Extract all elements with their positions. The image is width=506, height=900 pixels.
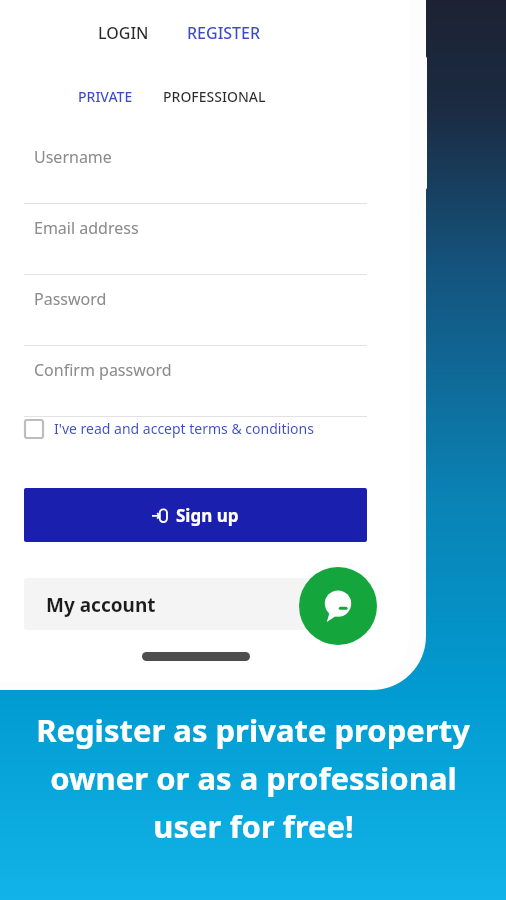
staticText: Register as private property [36,709,470,751]
staticText: Confirm password [34,359,172,381]
staticText: I've read and accept terms & conditions [54,419,314,438]
button[interactable]: My account [24,578,367,630]
button[interactable]: Username [24,144,367,204]
staticText: PRIVATE [78,87,133,106]
button[interactable]: REGISTER [181,18,267,48]
staticText: Sign up [176,504,239,527]
staticText: Password [34,288,107,310]
staticText: owner or as a professional [50,757,457,799]
button[interactable]: PROFESSIONAL [157,83,272,110]
staticText: user for free! [153,805,354,847]
button[interactable]: Sign up [24,488,367,542]
button[interactable]: PRIVATE [72,83,139,110]
button[interactable]: I've read and accept terms & conditions [22,414,317,443]
staticText: Email address [34,217,139,239]
staticText: REGISTER [187,22,261,44]
staticText: LOGIN [98,22,149,44]
staticText: Username [34,146,112,168]
staticText: PROFESSIONAL [163,87,266,106]
button[interactable]: Email address [24,215,367,275]
button[interactable]: Password [24,286,367,346]
staticText: My account [46,592,156,618]
button[interactable]: LOGIN [92,18,155,48]
button[interactable]: Open chat support [299,567,377,645]
button[interactable]: Confirm password [24,357,367,417]
